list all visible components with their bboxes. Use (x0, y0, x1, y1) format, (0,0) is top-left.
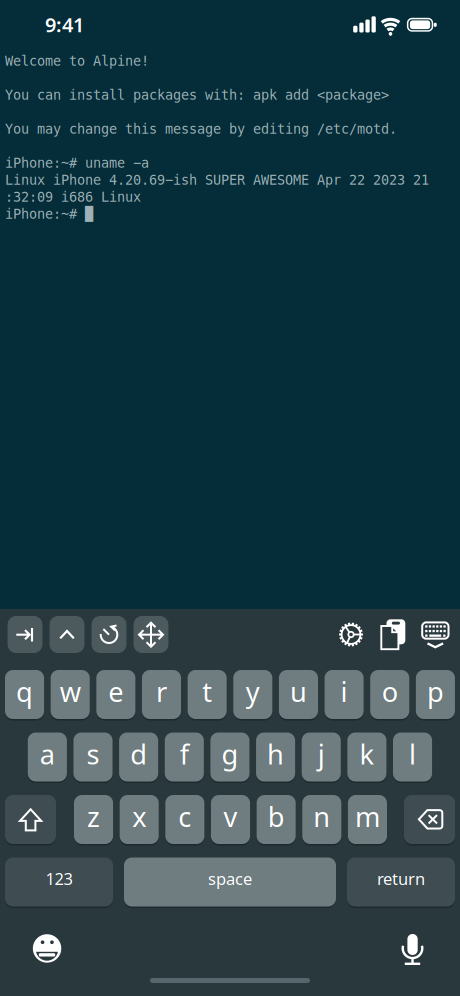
staticText: s (86, 735, 99, 772)
staticText: m (355, 798, 380, 835)
staticText: 9:41 (45, 11, 84, 38)
button[interactable]: i (325, 670, 364, 719)
staticText: q (16, 673, 33, 710)
staticText: z (87, 798, 100, 835)
button[interactable] (50, 616, 84, 653)
staticText: f (180, 735, 189, 772)
button[interactable]: r (142, 670, 181, 719)
staticText: n (313, 798, 330, 835)
button[interactable]: w (51, 670, 90, 719)
staticText: k (359, 735, 374, 772)
staticText: t (202, 673, 212, 710)
button[interactable]: return (347, 857, 455, 906)
button[interactable] (404, 795, 455, 844)
staticText: a (40, 735, 55, 772)
staticText: h (267, 735, 284, 772)
staticText: j (318, 735, 325, 772)
staticText: 123 (45, 867, 72, 890)
button[interactable] (134, 616, 168, 653)
staticText: p (427, 673, 444, 710)
button[interactable]: o (370, 670, 409, 719)
button[interactable] (418, 617, 452, 653)
button[interactable]: f (165, 732, 204, 781)
staticText: w (60, 673, 81, 710)
button[interactable]: b (257, 795, 296, 844)
button[interactable]: p (416, 670, 455, 719)
button[interactable]: g (210, 732, 249, 781)
button[interactable]: y (233, 670, 272, 719)
button[interactable] (376, 617, 410, 653)
button[interactable] (5, 795, 56, 844)
button[interactable]: c (165, 795, 204, 844)
staticText: c (178, 798, 191, 835)
button[interactable]: n (302, 795, 341, 844)
button[interactable]: a (28, 732, 67, 781)
staticText: d (130, 735, 147, 772)
staticText: u (290, 673, 307, 710)
staticText: Linux iPhone 4.20.69−ish SUPER AWESOME A… (5, 172, 429, 188)
button[interactable]: d (119, 732, 158, 781)
staticText: y (246, 673, 260, 710)
button[interactable] (8, 616, 42, 653)
staticText: l (409, 735, 416, 772)
button[interactable]: t (188, 670, 227, 719)
staticText: You may change this message by editing /… (5, 121, 397, 137)
staticText: return (377, 867, 425, 890)
button[interactable]: q (5, 670, 44, 719)
staticText: Welcome to Alpine! (5, 53, 149, 69)
staticText: r (156, 673, 167, 710)
staticText: v (223, 798, 237, 835)
staticText: e (108, 673, 123, 710)
button[interactable]: e (96, 670, 135, 719)
button[interactable]: k (347, 732, 386, 781)
button[interactable]: z (74, 795, 113, 844)
staticText: i (341, 673, 348, 710)
staticText: iPhone:~# uname −a (5, 155, 149, 171)
button[interactable] (27, 928, 67, 968)
staticText: g (221, 735, 238, 772)
button[interactable]: h (256, 732, 295, 781)
button[interactable] (334, 617, 368, 653)
staticText: space (208, 867, 252, 890)
staticText: You can install packages with: apk add <… (5, 87, 389, 103)
staticText: :32:09 i686 Linux (5, 189, 141, 205)
button[interactable]: v (211, 795, 250, 844)
staticText: x (132, 798, 146, 835)
button[interactable]: s (73, 732, 113, 781)
button[interactable] (393, 928, 433, 968)
button[interactable]: j (302, 732, 341, 781)
staticText: iPhone:~# █ (5, 206, 93, 222)
button[interactable]: u (279, 670, 318, 719)
button[interactable]: x (120, 795, 159, 844)
staticText: b (268, 798, 285, 835)
button[interactable]: l (393, 732, 432, 781)
button[interactable] (92, 616, 126, 653)
staticText: o (382, 673, 398, 710)
button[interactable]: m (348, 795, 387, 844)
button[interactable]: 123 (5, 857, 113, 906)
button[interactable]: space (124, 857, 336, 906)
